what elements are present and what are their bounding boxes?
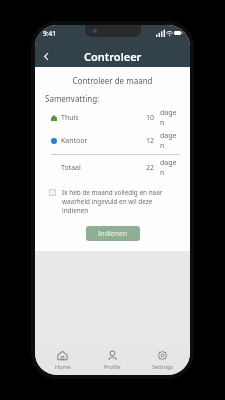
staticText: Kantoor — [61, 136, 88, 146]
button[interactable]: Indienen — [86, 226, 140, 241]
staticText: Home — [55, 363, 71, 370]
button[interactable]: Settings — [140, 345, 185, 375]
staticText: Thuis — [61, 113, 79, 123]
staticText: dagen — [160, 108, 180, 128]
button[interactable]: Profile — [90, 345, 135, 375]
staticText: 22 — [146, 163, 155, 173]
staticText: 12 — [146, 136, 155, 146]
staticText: Samenvatting: — [45, 93, 100, 104]
staticText: Totaal — [61, 163, 81, 173]
staticText: Profile — [104, 363, 121, 370]
staticText: dagen — [160, 158, 180, 178]
staticText: 10 — [146, 113, 155, 123]
staticText: Indienen — [98, 229, 128, 239]
staticText: dagen — [160, 131, 180, 151]
staticText: Settings — [152, 363, 173, 370]
button[interactable]: Home — [40, 345, 85, 375]
button[interactable]: Ik heb de maand volledig en naar waarhei… — [49, 188, 180, 215]
staticText: Ik heb de maand volledig en naar waarhei… — [62, 188, 180, 215]
staticText: 9:41 — [43, 29, 56, 38]
button[interactable]: Back — [35, 45, 57, 67]
staticText: Controleer — [84, 49, 142, 64]
staticText: Controleer de maand — [45, 75, 180, 86]
